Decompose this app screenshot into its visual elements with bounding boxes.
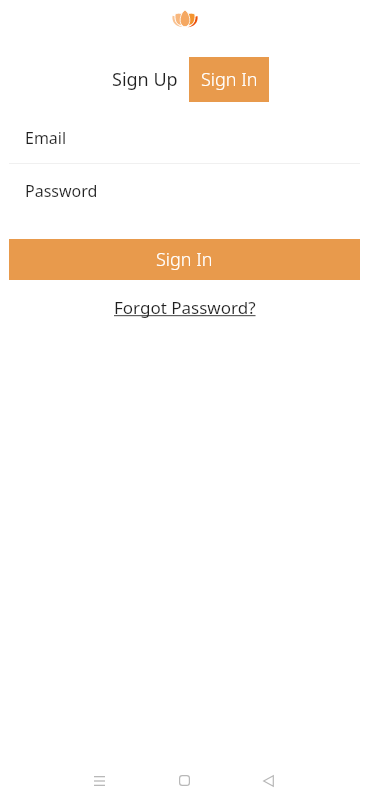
button[interactable]: Email bbox=[9, 113, 360, 163]
button[interactable]: Home bbox=[163, 761, 206, 800]
staticText: Email bbox=[25, 127, 67, 149]
staticText: Sign In bbox=[201, 67, 258, 92]
button[interactable]: Sign Up bbox=[101, 57, 189, 102]
button[interactable]: Sign In bbox=[189, 57, 269, 102]
staticText: Sign In bbox=[156, 247, 213, 272]
button[interactable]: Password bbox=[9, 164, 360, 218]
staticText: Password bbox=[25, 180, 98, 202]
button[interactable]: Forgot Password? bbox=[108, 294, 262, 321]
button[interactable]: Sign In bbox=[9, 239, 360, 280]
button[interactable]: Back bbox=[247, 761, 290, 800]
button[interactable]: Recent apps bbox=[78, 761, 121, 800]
staticText: Sign Up bbox=[112, 67, 178, 92]
